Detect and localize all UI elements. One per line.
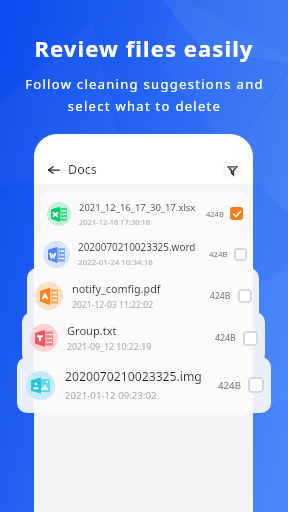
staticText: 424B	[206, 209, 224, 219]
button[interactable]: 2020070210023325.word	[36, 229, 253, 279]
staticText: 2021-12-03 11:22:02	[72, 299, 154, 311]
staticText: 2021-12-16 17:30:18	[79, 217, 151, 227]
staticText: 2020070210023325.word	[78, 240, 196, 254]
staticText: 424B	[215, 332, 236, 344]
button[interactable]: Group.txt	[22, 312, 265, 364]
staticText: 2021_12_16_17_30_17.xlsx	[79, 201, 196, 214]
button[interactable]: Select file	[234, 248, 247, 261]
staticText: Follow cleaning suggestions and select w…	[25, 75, 264, 115]
button[interactable]: Back	[47, 163, 61, 177]
button[interactable]: 2021_12_16_17_30_17.xlsx	[40, 191, 249, 236]
staticText: 2022-01-24 10:34:16	[78, 257, 153, 268]
button[interactable]: Select file	[238, 289, 252, 303]
button[interactable]: 2020070210023325.img	[17, 357, 271, 413]
staticText: 2021-01-12 09:23:02	[65, 389, 157, 402]
button[interactable]: Select file	[243, 331, 258, 346]
button[interactable]: Select file	[230, 207, 243, 220]
staticText: 2021-09_12 10:22:19	[67, 341, 152, 353]
button[interactable]: notify_comfig.pdf	[27, 268, 259, 323]
staticText: Review files easily	[34, 33, 254, 63]
staticText: 2020070210023325.img	[65, 368, 202, 385]
staticText: 424B	[209, 249, 228, 260]
staticText: notify_comfig.pdf	[72, 281, 161, 296]
staticText: Group.txt	[67, 323, 117, 338]
staticText: 424B	[218, 379, 241, 392]
staticText: Docs	[68, 161, 97, 178]
button[interactable]: Filter	[222, 160, 242, 180]
staticText: 424B	[210, 290, 231, 302]
button[interactable]: Select file	[248, 377, 264, 393]
